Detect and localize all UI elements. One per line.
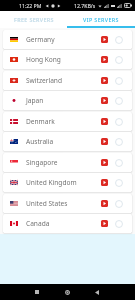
button[interactable]: Select Switzerland server (115, 77, 123, 85)
staticText: Denmark (26, 117, 55, 126)
staticText: United States (26, 199, 68, 208)
staticText: Germany (26, 35, 55, 44)
button[interactable]: Select Singapore server (115, 159, 123, 167)
staticText: Singapore (26, 158, 58, 167)
button[interactable]: Watch ad to unlock (101, 118, 108, 125)
button[interactable]: Singapore (3, 153, 132, 172)
button[interactable]: Select Germany server (115, 36, 123, 44)
button[interactable]: Select United States server (115, 200, 123, 208)
button[interactable]: Select Denmark server (115, 118, 123, 126)
button[interactable]: Select Hong Kong server (115, 56, 123, 64)
button[interactable]: Watch ad to unlock (101, 97, 108, 104)
button[interactable]: Select Australia server (115, 138, 123, 146)
staticText: FREE SERVERS (14, 16, 54, 23)
staticText: Canada (26, 219, 50, 228)
button[interactable]: Select United Kingdom server (115, 179, 123, 187)
button[interactable]: Australia (3, 132, 132, 151)
staticText: 11:22 PM (19, 2, 42, 9)
button[interactable]: Switzerland (3, 71, 132, 90)
button[interactable]: Watch ad to unlock (101, 36, 108, 43)
button[interactable]: Back (91, 286, 103, 298)
button[interactable]: United States (3, 194, 132, 213)
button[interactable]: Canada (3, 214, 132, 233)
button[interactable]: Select Canada server (115, 220, 123, 228)
staticText: 12.7KB/s (74, 2, 96, 9)
button[interactable]: Hong Kong (3, 50, 132, 69)
staticText: VIP SERVERS (83, 16, 119, 23)
button[interactable]: Watch ad to unlock (101, 200, 108, 207)
button[interactable]: Watch ad to unlock (101, 159, 108, 166)
staticText: Japan (26, 96, 44, 105)
button[interactable]: Watch ad to unlock (101, 138, 108, 145)
staticText: Switzerland (26, 76, 62, 85)
staticText: Australia (26, 137, 54, 146)
button[interactable]: Select Japan server (115, 97, 123, 105)
button[interactable]: Watch ad to unlock (101, 220, 108, 227)
staticText: United Kingdom (26, 178, 77, 187)
button[interactable]: Watch ad to unlock (101, 179, 108, 186)
button[interactable]: United Kingdom (3, 173, 132, 192)
button[interactable]: Germany (3, 30, 132, 49)
button[interactable]: Home (61, 286, 73, 298)
button[interactable]: Japan (3, 91, 132, 110)
button[interactable]: Denmark (3, 112, 132, 131)
staticText: Hong Kong (26, 55, 61, 64)
button[interactable]: Recent apps (31, 286, 43, 298)
button[interactable]: Watch ad to unlock (101, 77, 108, 84)
button[interactable]: FREE SERVERS (0, 11, 67, 28)
button[interactable]: VIP SERVERS (67, 11, 135, 28)
button[interactable]: Watch ad to unlock (101, 56, 108, 63)
